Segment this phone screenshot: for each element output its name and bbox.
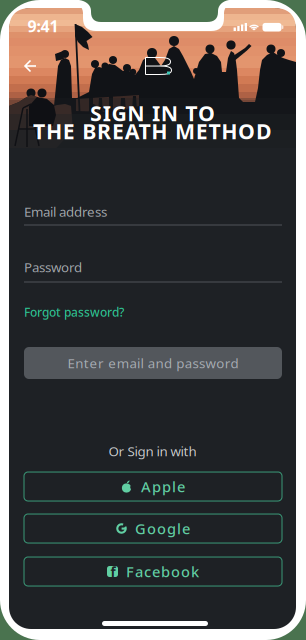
button[interactable]: Email address [24, 203, 282, 220]
staticText: f [110, 563, 115, 581]
staticText: Password [24, 258, 82, 276]
staticText: Email address [24, 203, 107, 220]
button[interactable]: Forgot password? [24, 304, 282, 320]
staticText: Or Sign in with [108, 442, 196, 460]
button[interactable]: f [24, 557, 282, 586]
button[interactable]: Password [24, 258, 282, 276]
button[interactable]: Google [24, 514, 282, 543]
staticText: THE BREATH METHOD [33, 117, 272, 145]
staticText: Apple [141, 477, 185, 496]
staticText: Facebook [126, 562, 199, 581]
staticText: SIGN IN TO [90, 99, 215, 127]
button[interactable] [102, 621, 208, 626]
staticText: Forgot password? [24, 304, 124, 320]
staticText: Enter email and password [68, 354, 238, 372]
staticText: Google [135, 519, 190, 538]
button[interactable] [23, 59, 37, 72]
staticText: 9:41 [27, 15, 58, 37]
button[interactable]: Enter email and password [24, 347, 282, 379]
button[interactable]: Apple [24, 472, 282, 501]
